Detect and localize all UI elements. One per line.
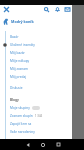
button[interactable]: Messages bbox=[62, 5, 72, 14]
staticText: Môj zoznam bbox=[10, 67, 29, 71]
staticText: Zoznam skupín bbox=[10, 114, 33, 118]
button[interactable]: Moje skupiny bbox=[0, 104, 72, 112]
staticText: Uložené inzeráty bbox=[10, 43, 35, 47]
staticText: Môj predaj bbox=[10, 75, 27, 79]
button[interactable]: Home bbox=[37, 139, 49, 150]
staticText: Blogy bbox=[10, 98, 19, 102]
staticText: Môje nákupy bbox=[10, 59, 30, 63]
button[interactable]: Zoznam skupín bbox=[0, 112, 72, 120]
button[interactable]: Blogy bbox=[0, 96, 72, 104]
button[interactable]: Back bbox=[22, 139, 34, 150]
staticText: Modrý koník bbox=[11, 19, 34, 24]
button[interactable]: Bazár bbox=[0, 33, 72, 41]
button[interactable]: Notifications bbox=[52, 5, 62, 14]
button[interactable]: Close bbox=[1, 5, 11, 14]
button[interactable]: Search bbox=[41, 5, 51, 14]
button[interactable]: Môj predaj bbox=[0, 73, 72, 81]
button[interactable]: Môje nákupy bbox=[0, 57, 72, 65]
staticText: Moje skupiny bbox=[10, 106, 30, 110]
button[interactable]: Modrý koník bbox=[0, 17, 34, 25]
button[interactable]: Uložené inzeráty bbox=[0, 41, 72, 49]
staticText: Diskusie bbox=[10, 86, 23, 90]
staticText: Zapojiť krm sa bbox=[10, 122, 32, 126]
staticText: 1 344 bbox=[35, 114, 43, 118]
button[interactable]: Môj bazár bbox=[0, 49, 72, 57]
staticText: Môj bazár bbox=[10, 51, 25, 55]
button[interactable]: Recents bbox=[52, 139, 64, 150]
button[interactable]: Vaše narodeniny bbox=[0, 128, 72, 136]
button[interactable]: Môj zoznam bbox=[0, 65, 72, 73]
button[interactable]: Zapojiť krm sa bbox=[0, 120, 72, 128]
button[interactable]: Diskusie bbox=[0, 84, 72, 92]
staticText: Bazár bbox=[10, 35, 19, 39]
staticText: Vaše narodeniny bbox=[10, 130, 35, 134]
